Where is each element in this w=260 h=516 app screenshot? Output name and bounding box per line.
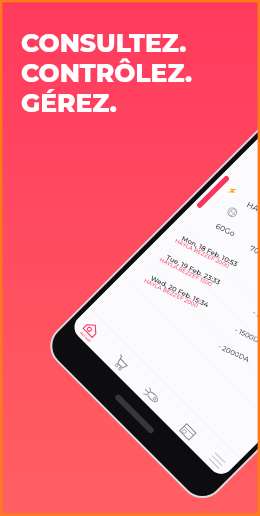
staticText: GÉREZ. (21, 88, 117, 118)
staticText: CONTRÔLEZ. (21, 58, 192, 88)
staticText: CONSULTEZ. (21, 28, 187, 58)
